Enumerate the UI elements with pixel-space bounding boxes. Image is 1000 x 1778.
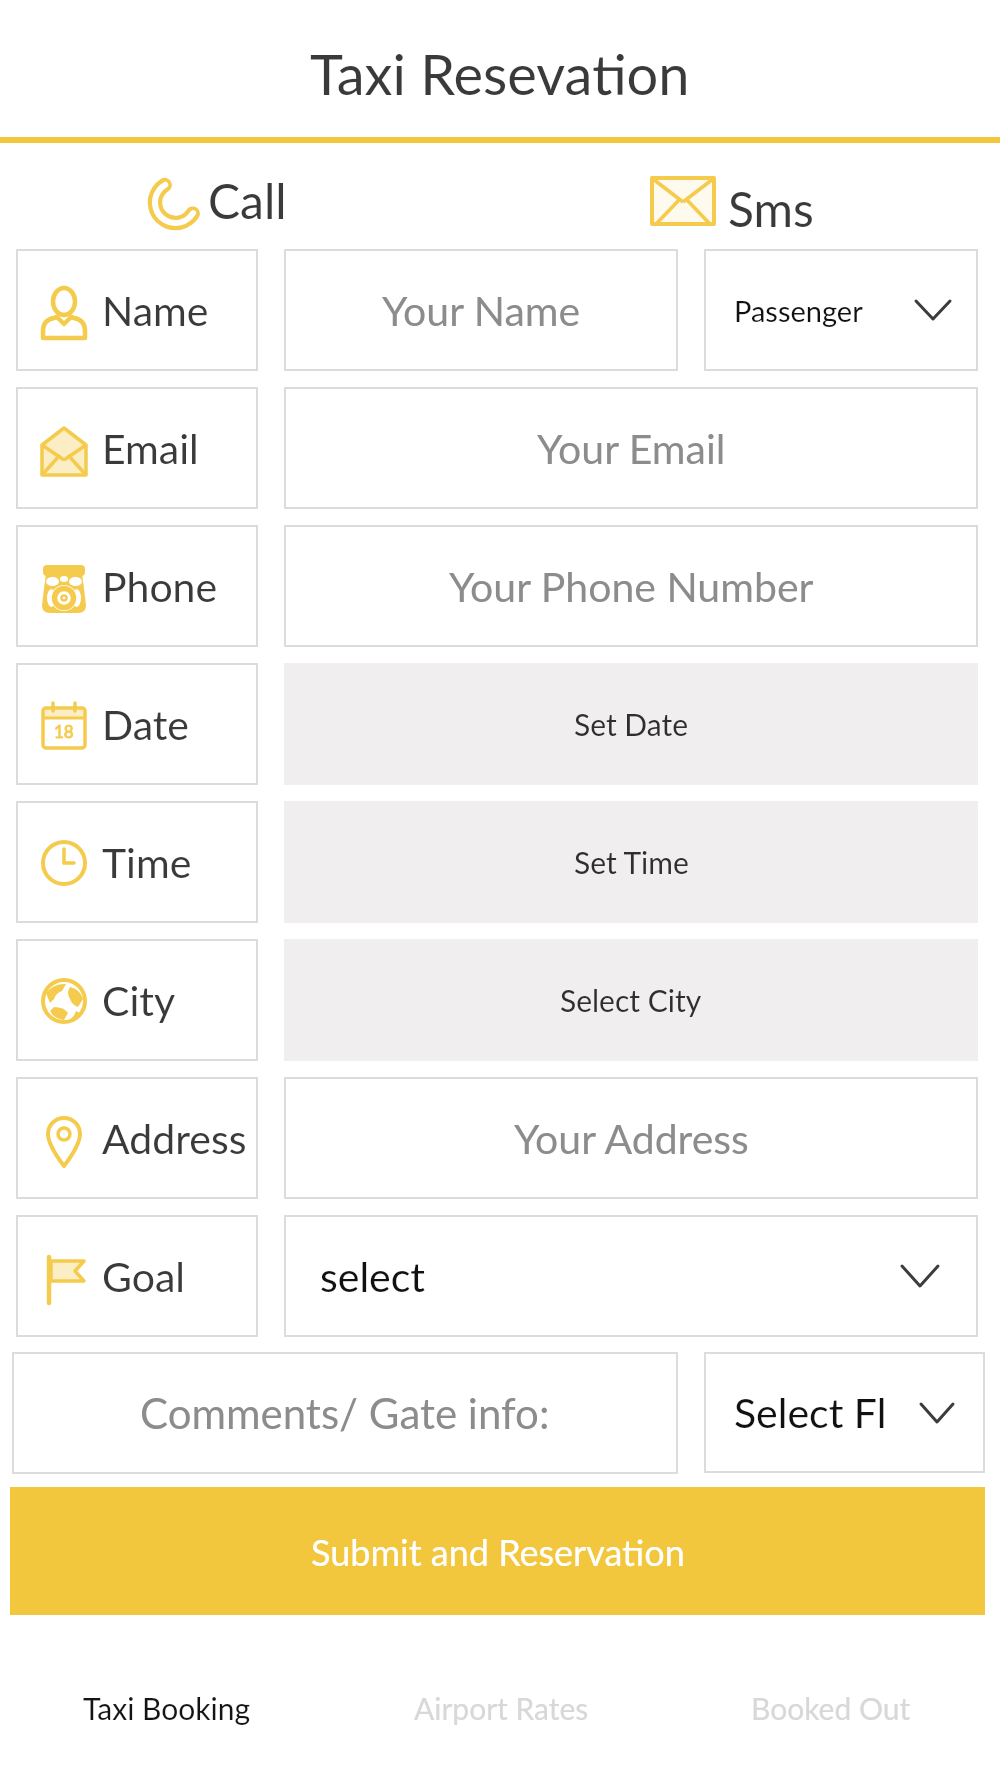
button[interactable]: Name — [16, 249, 258, 371]
staticText: Comments/ Gate info: — [140, 1388, 550, 1438]
staticText: City — [102, 976, 176, 1025]
staticText: Date — [102, 700, 190, 749]
button[interactable]: City — [16, 939, 258, 1061]
staticText: Select City — [560, 982, 702, 1018]
button[interactable]: Set Date — [284, 663, 978, 785]
staticText: Goal — [102, 1252, 186, 1301]
staticText: Passenger — [734, 293, 863, 328]
staticText: Taxi Booking — [83, 1690, 250, 1726]
button[interactable]: Your Name — [284, 249, 678, 371]
button[interactable]: Your Phone Number — [284, 525, 978, 647]
staticText: Set Date — [574, 706, 689, 742]
staticText: Time — [102, 838, 192, 887]
button[interactable]: Address — [16, 1077, 258, 1199]
button[interactable]: Select City — [284, 939, 978, 1061]
button[interactable]: Your Email — [284, 387, 978, 509]
staticText: Your Name — [382, 286, 581, 335]
staticText: Your Email — [537, 424, 726, 473]
button[interactable]: Phone — [16, 525, 258, 647]
staticText: Set Time — [574, 844, 689, 880]
staticText: Name — [102, 286, 209, 335]
button[interactable]: Booked Out — [731, 1680, 931, 1735]
button[interactable]: Sms — [650, 176, 814, 242]
button[interactable]: Email — [16, 387, 258, 509]
staticText: Select Fl — [734, 1388, 887, 1437]
button[interactable]: Select Fl — [704, 1352, 985, 1473]
staticText: Submit and Reservation — [311, 1530, 685, 1573]
button[interactable]: select — [284, 1215, 978, 1337]
staticText: 18 — [54, 721, 74, 741]
staticText: Email — [102, 424, 199, 473]
staticText: Call — [208, 172, 287, 230]
button[interactable]: Your Address — [284, 1077, 978, 1199]
button[interactable]: Call — [148, 172, 287, 230]
button[interactable]: Goal — [16, 1215, 258, 1337]
button[interactable]: Taxi Booking — [66, 1680, 266, 1735]
button[interactable]: Airport Rates — [401, 1680, 601, 1735]
button[interactable]: Time — [16, 801, 258, 923]
staticText: Booked Out — [751, 1690, 911, 1726]
staticText: select — [320, 1252, 426, 1301]
button[interactable]: Passenger — [704, 249, 978, 371]
button[interactable]: 18 — [16, 663, 258, 785]
staticText: Address — [102, 1114, 247, 1163]
staticText: Taxi Resevation — [310, 40, 690, 107]
button[interactable]: Submit and Reservation — [10, 1487, 985, 1615]
staticText: Your Address — [514, 1114, 749, 1163]
staticText: Phone — [102, 562, 218, 611]
button[interactable]: Comments/ Gate info: — [12, 1352, 678, 1474]
staticText: Your Phone Number — [449, 562, 814, 611]
staticText: Sms — [728, 180, 814, 238]
staticText: Airport Rates — [414, 1690, 589, 1726]
button[interactable]: Set Time — [284, 801, 978, 923]
